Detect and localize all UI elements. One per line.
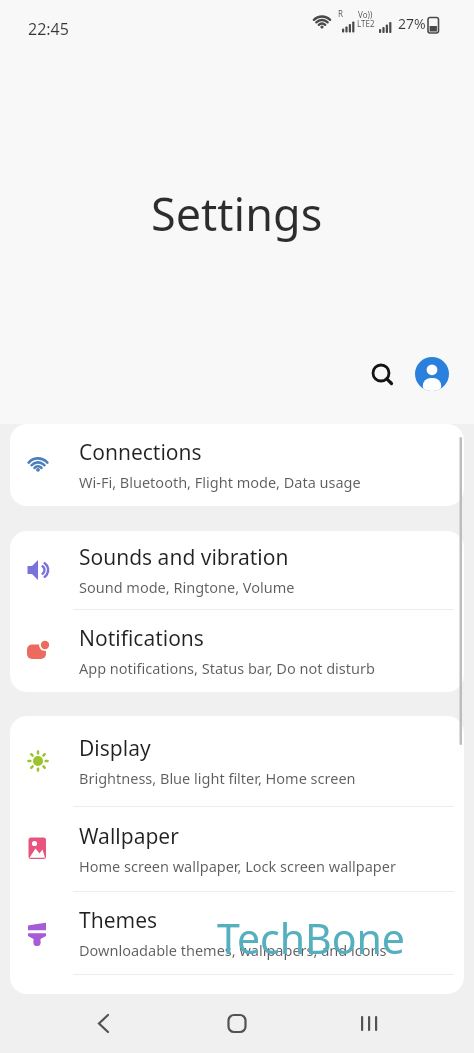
staticText: LTE2 [357, 18, 375, 29]
staticText: Sound mode, Ringtone, Volume [79, 577, 295, 597]
button[interactable]: Notifications [10, 610, 464, 692]
staticText: Brightness, Blue light filter, Home scre… [79, 768, 356, 788]
button[interactable]: Wallpaper [10, 807, 464, 891]
staticText: Connections [79, 438, 202, 467]
button[interactable] [83, 1003, 123, 1043]
button[interactable] [415, 357, 449, 391]
button[interactable]: Themes [10, 892, 464, 974]
staticText: Themes [79, 906, 158, 935]
staticText: Vo)) [358, 9, 373, 20]
staticText: Display [79, 734, 151, 763]
staticText: R [338, 8, 343, 19]
staticText: App notifications, Status bar, Do not di… [79, 658, 375, 678]
button[interactable] [363, 356, 400, 393]
staticText: TechBone [217, 910, 405, 966]
staticText: Downloadable themes, wallpapers, and ico… [79, 940, 387, 960]
staticText: Sounds and vibration [79, 543, 289, 572]
staticText: Settings [151, 183, 323, 244]
button[interactable]: Connections [10, 424, 464, 506]
button[interactable]: Sounds and vibration [10, 531, 464, 609]
staticText: 27% [398, 14, 426, 33]
staticText: Home screen wallpaper, Lock screen wallp… [79, 856, 396, 876]
staticText: 22:45 [28, 18, 69, 40]
staticText: Wi-Fi, Bluetooth, Flight mode, Data usag… [79, 472, 361, 492]
staticText: Wallpaper [79, 822, 179, 851]
button[interactable] [348, 1003, 388, 1043]
staticText: Notifications [79, 624, 204, 653]
button[interactable] [217, 1003, 257, 1043]
button[interactable]: Display [10, 716, 464, 806]
